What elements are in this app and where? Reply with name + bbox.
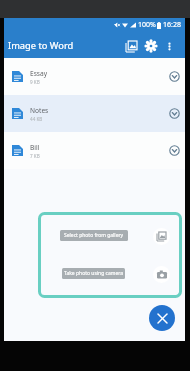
staticText: Image to Word [8,39,74,52]
staticText: Take photo using camera [64,270,124,277]
button[interactable]: Select photo from gallery [60,230,128,241]
staticText: 16:28 [163,20,181,30]
staticText: Notes [30,106,49,115]
staticText: 44 KB [30,116,43,122]
button[interactable]: Bill [4,132,185,169]
button[interactable]: Open gallery [120,35,142,57]
button[interactable]: Take photo using camera [153,266,170,283]
staticText: Essay [30,69,48,78]
staticText: 7 KB [30,153,40,159]
staticText: 100% [138,20,156,30]
staticText: Select photo from gallery [64,232,124,239]
button[interactable]: Notes [4,95,185,132]
button[interactable]: Take photo using camera [62,268,125,279]
staticText: 9 KB [30,79,40,85]
button[interactable]: Close menu [149,305,175,331]
staticText: Bill [30,143,40,152]
button[interactable]: Settings [140,35,162,57]
button[interactable]: More options [159,36,179,56]
button[interactable]: Select photo from gallery [153,228,170,245]
button[interactable]: Essay [4,58,185,95]
